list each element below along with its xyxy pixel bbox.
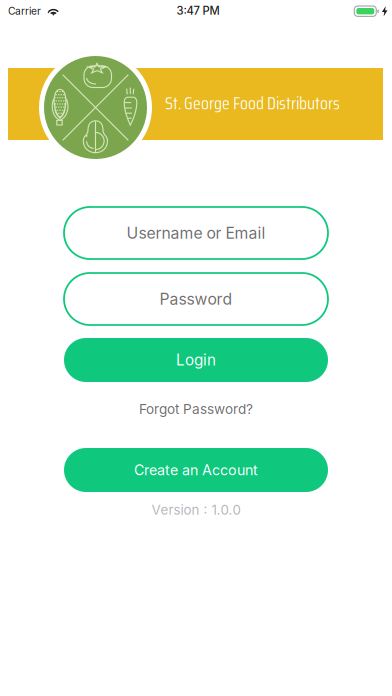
button[interactable]: Login [64,338,328,382]
staticText: Login [176,351,216,369]
button[interactable]: Create an Account [64,448,328,492]
staticText: Carrier [8,5,41,17]
staticText: St. George Food Distributors [165,89,340,117]
staticText: Forgot Password? [139,401,253,417]
staticText: Create an Account [134,461,258,479]
button[interactable]: Forgot Password? [64,394,328,424]
staticText: Password [159,289,232,308]
staticText: 3:47 PM [176,4,219,18]
staticText: Username or Email [126,223,265,242]
staticText: Version : 1.0.0 [151,502,240,518]
